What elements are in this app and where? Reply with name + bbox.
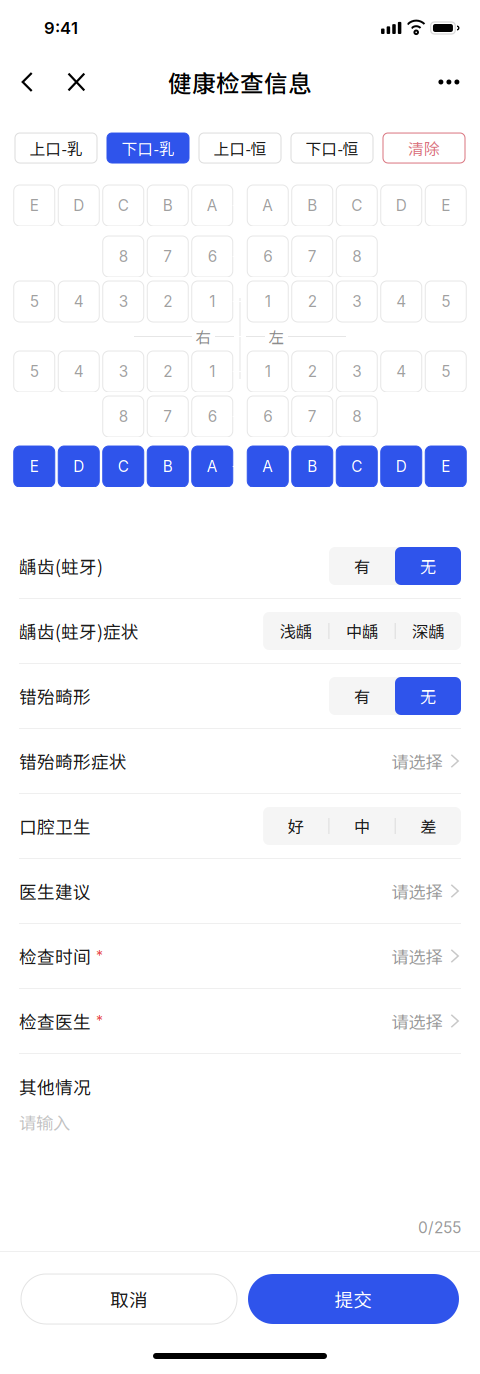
staticText: 请选择: [391, 943, 442, 968]
button[interactable]: 检查时间: [0, 924, 480, 989]
staticText: 请选择: [391, 1008, 442, 1033]
button[interactable]: B: [292, 446, 333, 487]
button[interactable]: E: [14, 446, 55, 487]
button[interactable]: 有: [329, 547, 395, 585]
button[interactable]: 1: [247, 351, 288, 392]
staticText: A: [207, 196, 218, 215]
button[interactable]: C: [336, 185, 377, 226]
button[interactable]: 好: [263, 807, 328, 845]
button[interactable]: 无: [395, 547, 461, 585]
button[interactable]: 1: [192, 281, 233, 322]
button[interactable]: 6: [247, 396, 288, 437]
button[interactable]: D: [58, 446, 99, 487]
button[interactable]: D: [381, 185, 422, 226]
button[interactable]: 3: [103, 281, 144, 322]
button[interactable]: 7: [147, 396, 188, 437]
button[interactable]: A: [247, 185, 288, 226]
button[interactable]: 2: [292, 281, 333, 322]
button[interactable]: B: [147, 446, 188, 487]
staticText: E: [441, 196, 450, 215]
button[interactable]: 5: [425, 281, 466, 322]
button[interactable]: 8: [336, 396, 377, 437]
button[interactable]: 1: [192, 351, 233, 392]
button[interactable]: 上口-恒: [199, 133, 281, 163]
button[interactable]: 检查医生: [0, 989, 480, 1054]
staticText: 其他情况: [19, 1074, 91, 1099]
staticText: 6: [263, 407, 272, 426]
button[interactable]: 5: [425, 351, 466, 392]
button[interactable]: 3: [336, 351, 377, 392]
button[interactable]: 2: [147, 351, 188, 392]
button[interactable]: 下口-乳: [107, 133, 189, 163]
button[interactable]: 1: [247, 281, 288, 322]
button[interactable]: 有: [329, 677, 395, 715]
button[interactable]: 关闭: [61, 56, 91, 108]
button[interactable]: 5: [14, 351, 55, 392]
button[interactable]: 差: [396, 807, 461, 845]
button[interactable]: B: [292, 185, 333, 226]
button[interactable]: 2: [147, 281, 188, 322]
button[interactable]: 中龋: [329, 612, 395, 650]
button[interactable]: 8: [103, 236, 144, 277]
button[interactable]: B: [147, 185, 188, 226]
button[interactable]: 8: [103, 396, 144, 437]
button[interactable]: 医生建议: [0, 859, 480, 924]
button[interactable]: 6: [192, 236, 233, 277]
button[interactable]: 4: [58, 351, 99, 392]
button[interactable]: 错殆畸形症状: [0, 729, 480, 794]
button[interactable]: 2: [292, 351, 333, 392]
button[interactable]: E: [14, 185, 55, 226]
button[interactable]: 上口-乳: [15, 133, 97, 163]
button[interactable]: D: [381, 446, 422, 487]
button[interactable]: 提交: [248, 1274, 459, 1324]
button[interactable]: 4: [381, 351, 422, 392]
staticText: A: [262, 457, 273, 476]
staticText: 5: [441, 362, 450, 381]
button[interactable]: C: [103, 185, 144, 226]
button[interactable]: 8: [336, 236, 377, 277]
button[interactable]: 7: [292, 396, 333, 437]
button[interactable]: D: [58, 185, 99, 226]
staticText: B: [307, 457, 317, 476]
button[interactable]: A: [192, 185, 233, 226]
button[interactable]: 4: [58, 281, 99, 322]
staticText: 8: [119, 407, 128, 426]
button[interactable]: E: [425, 446, 466, 487]
staticText: 7: [163, 247, 172, 266]
button[interactable]: 7: [147, 236, 188, 277]
button[interactable]: 无: [395, 677, 461, 715]
button[interactable]: 浅龋: [263, 612, 328, 650]
button[interactable]: 更多: [438, 56, 480, 108]
button[interactable]: 3: [103, 351, 144, 392]
staticText: E: [30, 196, 39, 215]
button[interactable]: E: [425, 185, 466, 226]
staticText: 6: [208, 247, 217, 266]
button[interactable]: 4: [381, 281, 422, 322]
button[interactable]: 返回: [0, 56, 61, 108]
button[interactable]: C: [336, 446, 377, 487]
staticText: 1: [265, 292, 271, 311]
button[interactable]: 5: [14, 281, 55, 322]
button[interactable]: 3: [336, 281, 377, 322]
button[interactable]: 6: [247, 236, 288, 277]
staticText: 1: [209, 362, 215, 381]
button[interactable]: 中: [329, 807, 395, 845]
staticText: 右: [195, 325, 211, 348]
button[interactable]: 清除: [383, 133, 465, 163]
button[interactable]: C: [103, 446, 144, 487]
staticText: 7: [308, 247, 317, 266]
staticText: 健康检查信息: [168, 65, 312, 99]
button[interactable]: 下口-恒: [291, 133, 373, 163]
button[interactable]: 取消: [21, 1274, 237, 1324]
button[interactable]: 深龋: [396, 612, 461, 650]
button[interactable]: A: [247, 446, 288, 487]
staticText: 4: [396, 362, 406, 381]
button[interactable]: 6: [192, 396, 233, 437]
staticText: 3: [352, 362, 361, 381]
staticText: *: [96, 1012, 103, 1029]
button[interactable]: A: [192, 446, 233, 487]
staticText: 4: [396, 292, 406, 311]
staticText: 有: [354, 554, 370, 578]
button[interactable]: 7: [292, 236, 333, 277]
staticText: 1: [209, 292, 215, 311]
